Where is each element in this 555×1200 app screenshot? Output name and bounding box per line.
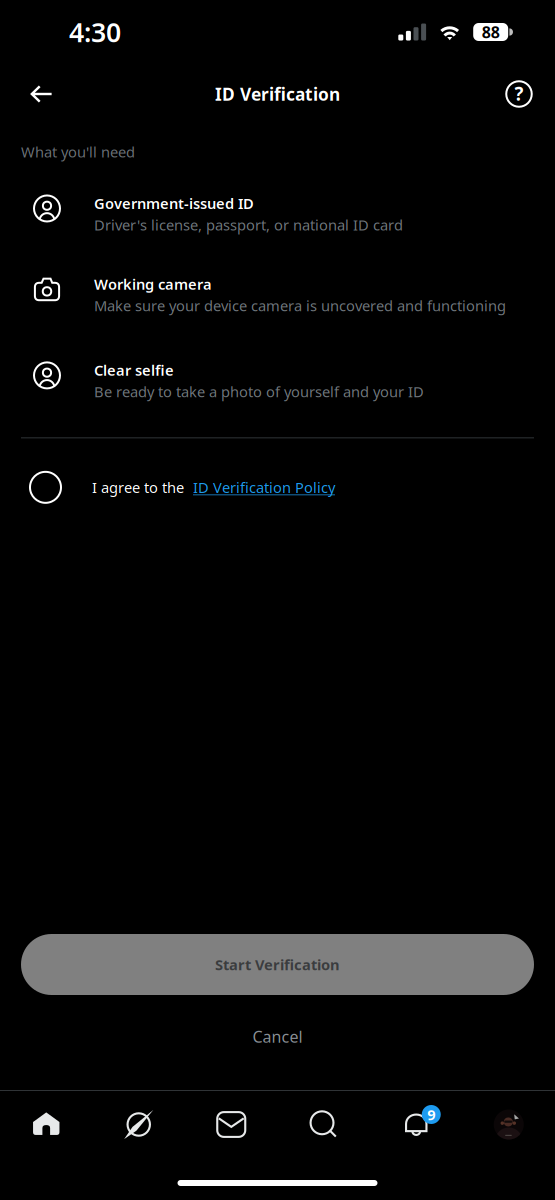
staticText: 88 bbox=[482, 21, 500, 43]
staticText: Start Verification bbox=[215, 955, 340, 974]
button[interactable]: Notifications bbox=[370, 1096, 462, 1152]
staticText: Be ready to take a photo of yourself and… bbox=[94, 382, 424, 401]
staticText: I agree to the bbox=[92, 478, 184, 497]
staticText: 4:30 bbox=[69, 14, 121, 50]
staticText: Working camera bbox=[94, 274, 212, 294]
staticText: ID Verification bbox=[215, 82, 340, 105]
button[interactable]: Help bbox=[499, 71, 539, 117]
button[interactable]: Home bbox=[0, 1096, 92, 1152]
button[interactable]: Grok bbox=[92, 1096, 185, 1152]
staticText: Driver's license, passport, or national … bbox=[94, 215, 403, 234]
staticText: ID Verification Policy bbox=[193, 478, 335, 497]
staticText: Government-issued ID bbox=[94, 193, 254, 213]
button[interactable]: I agree to the bbox=[0, 465, 555, 509]
button[interactable]: Profile bbox=[462, 1096, 555, 1152]
staticText: Make sure your device camera is uncovere… bbox=[94, 296, 506, 315]
button[interactable]: Start Verification bbox=[21, 934, 534, 995]
staticText: What you'll need bbox=[21, 142, 135, 161]
button[interactable]: Messages bbox=[185, 1096, 277, 1152]
staticText: Cancel bbox=[252, 1026, 302, 1047]
staticText: ? bbox=[514, 81, 523, 106]
staticText: Clear selfie bbox=[94, 360, 174, 380]
button[interactable]: Search bbox=[277, 1096, 370, 1152]
button[interactable]: Back bbox=[18, 71, 64, 117]
staticText: 9 bbox=[427, 1105, 435, 1124]
button[interactable]: Cancel bbox=[0, 995, 555, 1066]
